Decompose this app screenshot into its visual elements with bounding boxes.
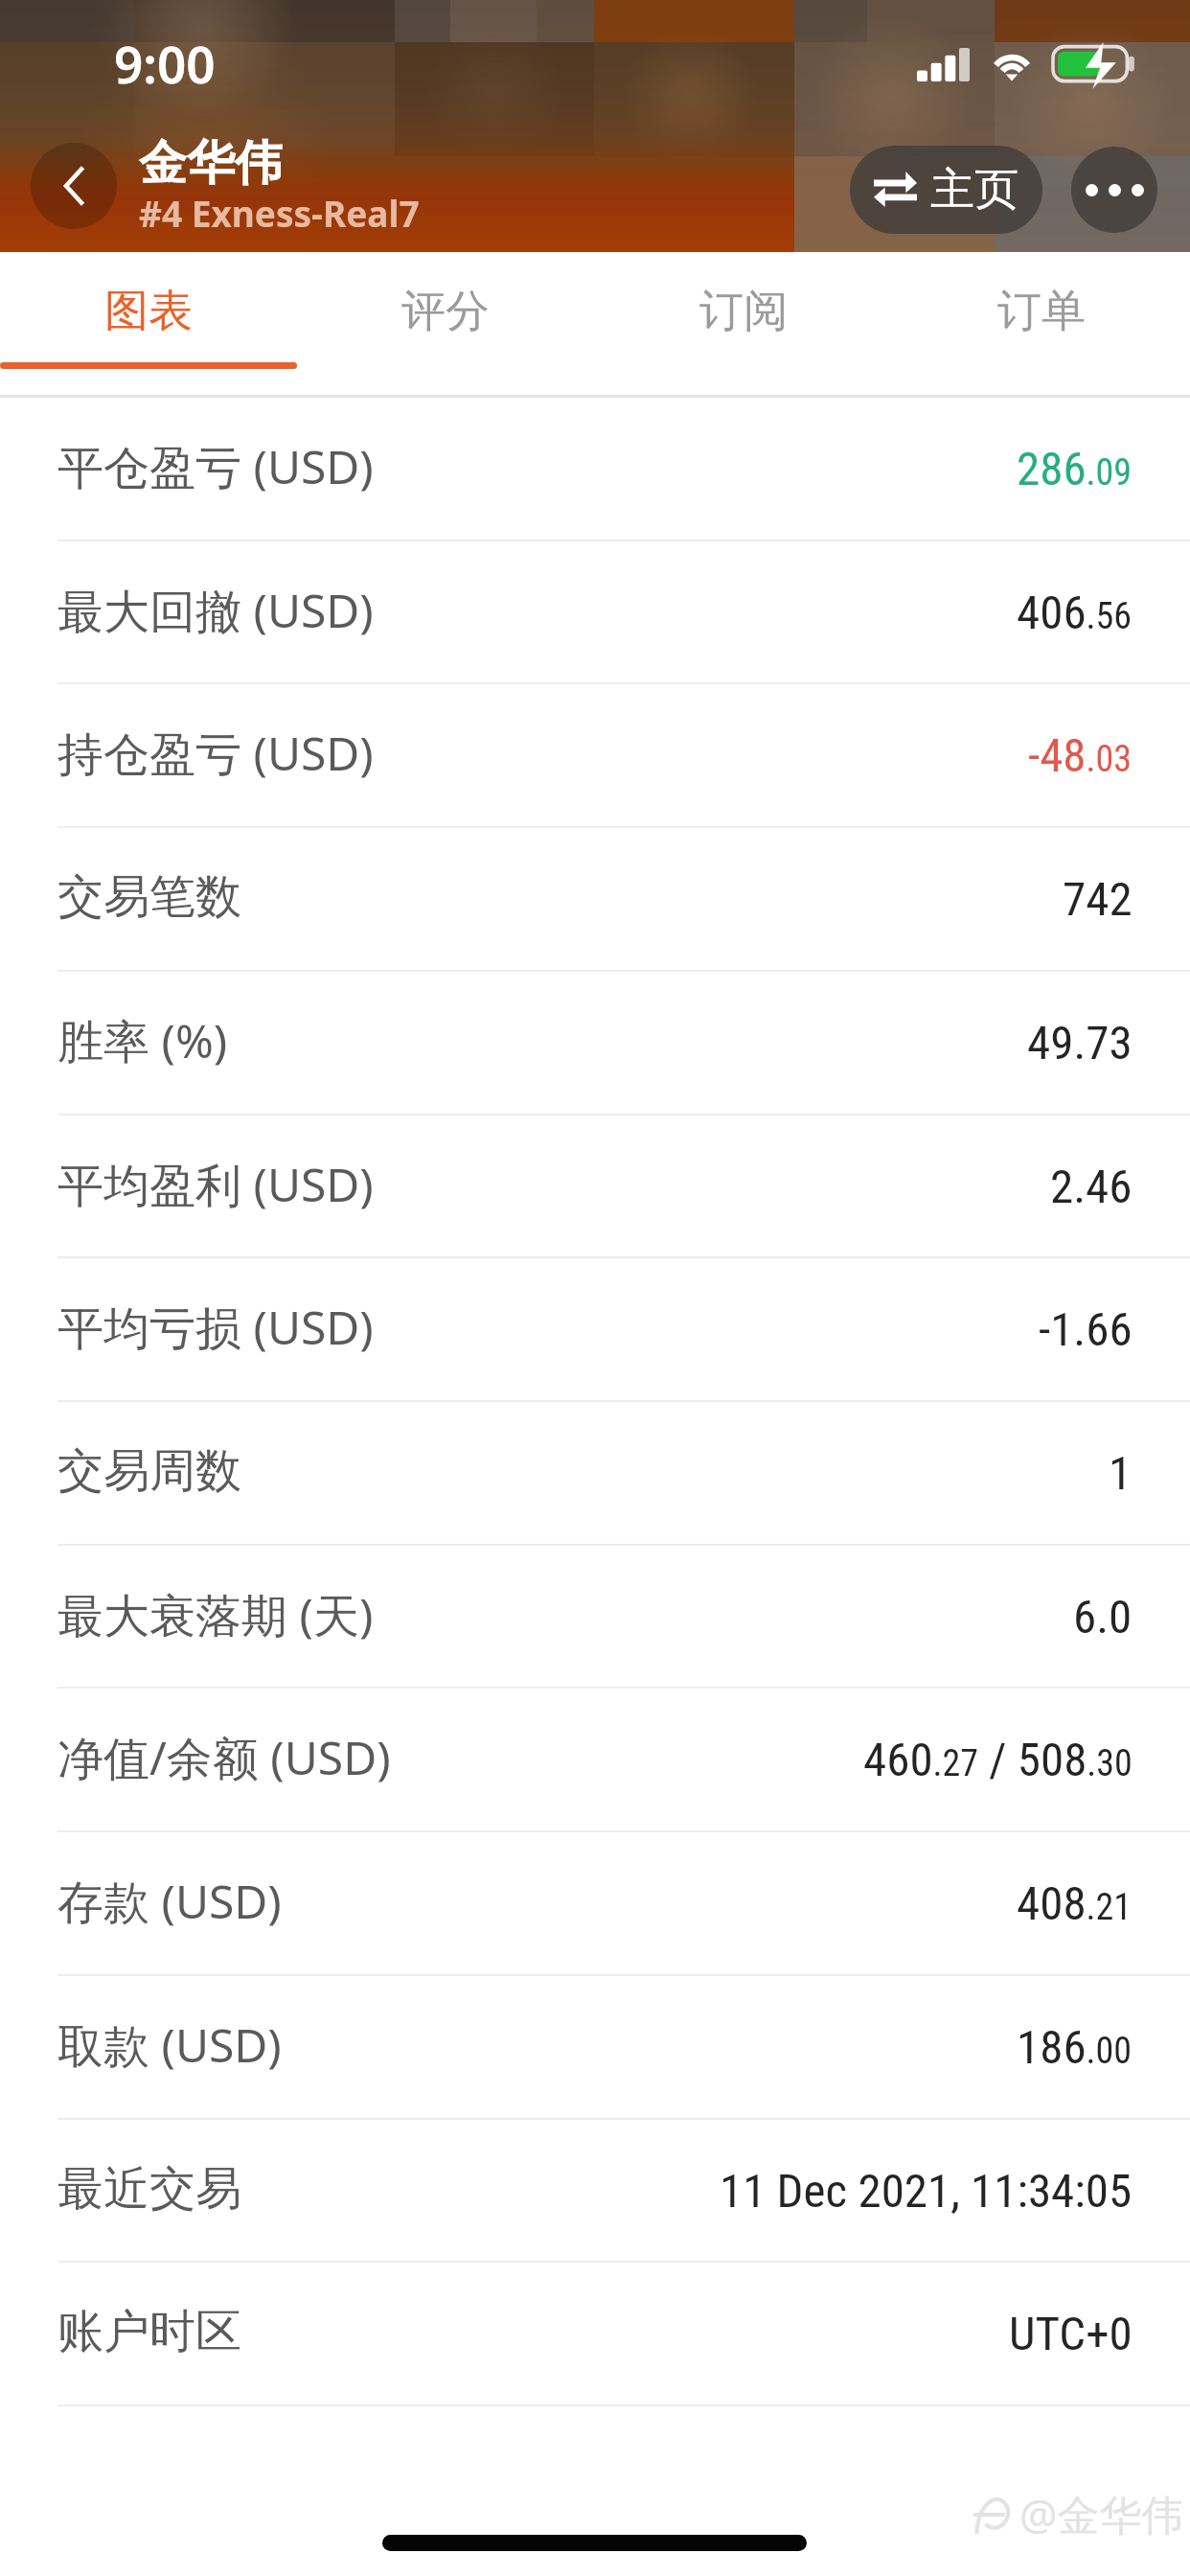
staticText: 主页 xyxy=(930,162,1018,218)
staticText: 图表 xyxy=(104,284,193,339)
staticText: 账户时区 xyxy=(57,2303,241,2360)
staticText: 金华伟 xyxy=(139,133,283,194)
staticText: 1 xyxy=(1109,1446,1133,1501)
button[interactable]: 平均亏损 (USD) xyxy=(0,1258,1190,1402)
button[interactable]: 净值/余额 (USD) xyxy=(0,1689,1190,1832)
button[interactable]: 评分 xyxy=(297,252,594,395)
button[interactable]: 订阅 xyxy=(594,252,892,395)
button[interactable]: 平均盈利 (USD) xyxy=(0,1115,1190,1259)
staticText: 11 Dec 2021, 11:34:05 xyxy=(720,2164,1133,2219)
staticText: 净值/余额 (USD) xyxy=(57,1726,391,1789)
button[interactable]: 订单 xyxy=(892,252,1190,395)
staticText: 2.46 xyxy=(1050,1160,1133,1214)
staticText: 持仓盈亏 (USD) xyxy=(57,722,374,785)
button[interactable]: 持仓盈亏 (USD) xyxy=(0,684,1190,828)
staticText: 460.27 / 508.30 xyxy=(863,1733,1133,1787)
button[interactable]: 主页 xyxy=(850,146,1042,234)
staticText: #4 Exness-Real7 xyxy=(139,189,420,237)
button[interactable]: 最大回撤 (USD) xyxy=(0,541,1190,685)
staticText: 取款 (USD) xyxy=(57,2013,282,2077)
staticText: 最大衰落期 (天) xyxy=(57,1583,374,1646)
button[interactable]: 平仓盈亏 (USD) xyxy=(0,398,1190,541)
staticText: 742 xyxy=(1063,872,1133,927)
staticText: 订阅 xyxy=(699,284,788,339)
staticText: -1.66 xyxy=(1039,1302,1133,1357)
staticText: 6.0 xyxy=(1073,1590,1133,1644)
button[interactable]: 交易笔数 xyxy=(0,828,1190,972)
staticText: @金华伟 xyxy=(1019,2485,1184,2542)
staticText: 平均盈利 (USD) xyxy=(57,1153,374,1216)
staticText: 交易周数 xyxy=(57,1442,241,1500)
staticText: 存款 (USD) xyxy=(57,1870,282,1933)
button[interactable]: 账户时区 xyxy=(0,2263,1190,2406)
staticText: 186.00 xyxy=(1017,2020,1133,2075)
staticText: 评分 xyxy=(401,284,490,339)
staticText: 286.09 xyxy=(1017,442,1133,496)
staticText: 最大回撤 (USD) xyxy=(57,579,374,642)
staticText: 平仓盈亏 (USD) xyxy=(57,435,374,498)
button[interactable]: 最近交易 xyxy=(0,2120,1190,2264)
staticText: UTC+0 xyxy=(1009,2307,1133,2361)
staticText: 9:00 xyxy=(114,29,216,98)
button[interactable]: 胜率 (%) xyxy=(0,972,1190,1115)
staticText: 最近交易 xyxy=(57,2160,241,2218)
staticText: 406.56 xyxy=(1017,586,1133,640)
staticText: 49.73 xyxy=(1027,1016,1133,1070)
staticText: 订单 xyxy=(997,284,1086,339)
button[interactable]: 取款 (USD) xyxy=(0,1976,1190,2120)
staticText: -48.03 xyxy=(1028,728,1133,783)
staticText: 胜率 (%) xyxy=(57,1009,228,1072)
button[interactable]: 存款 (USD) xyxy=(0,1832,1190,1976)
staticText: 平均亏损 (USD) xyxy=(57,1296,374,1359)
button[interactable]: 交易周数 xyxy=(0,1402,1190,1546)
staticText: 交易笔数 xyxy=(57,868,241,926)
staticText: 408.21 xyxy=(1017,1876,1133,1931)
button[interactable]: 图表 xyxy=(0,252,297,395)
button[interactable]: Back xyxy=(31,143,117,229)
button[interactable]: 最大衰落期 (天) xyxy=(0,1546,1190,1690)
button[interactable]: More options xyxy=(1071,147,1157,233)
